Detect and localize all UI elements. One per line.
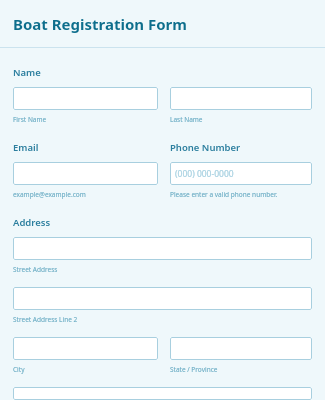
button[interactable] bbox=[13, 87, 158, 110]
button[interactable]: (000) 000-0000 bbox=[170, 162, 312, 185]
button[interactable] bbox=[170, 87, 312, 110]
button[interactable] bbox=[13, 387, 312, 400]
staticText: Street Address Line 2 bbox=[13, 315, 78, 324]
button[interactable] bbox=[13, 337, 158, 360]
staticText: First Name bbox=[13, 115, 47, 124]
staticText: State / Province bbox=[170, 365, 218, 374]
staticText: Street Address bbox=[13, 265, 58, 274]
button[interactable] bbox=[170, 337, 312, 360]
staticText: City bbox=[13, 365, 25, 374]
button[interactable] bbox=[13, 287, 312, 310]
button[interactable] bbox=[13, 237, 312, 260]
staticText: Last Name bbox=[170, 115, 203, 124]
button[interactable] bbox=[13, 162, 158, 185]
staticText: Please enter a valid phone number. bbox=[170, 190, 278, 199]
staticText: Email bbox=[13, 141, 39, 154]
staticText: (000) 000-0000 bbox=[175, 168, 234, 180]
staticText: Phone Number bbox=[170, 141, 241, 154]
staticText: Address bbox=[13, 216, 51, 229]
staticText: Boat Registration Form bbox=[13, 14, 187, 34]
staticText: Name bbox=[13, 66, 41, 79]
staticText: example@example.com bbox=[13, 190, 86, 199]
